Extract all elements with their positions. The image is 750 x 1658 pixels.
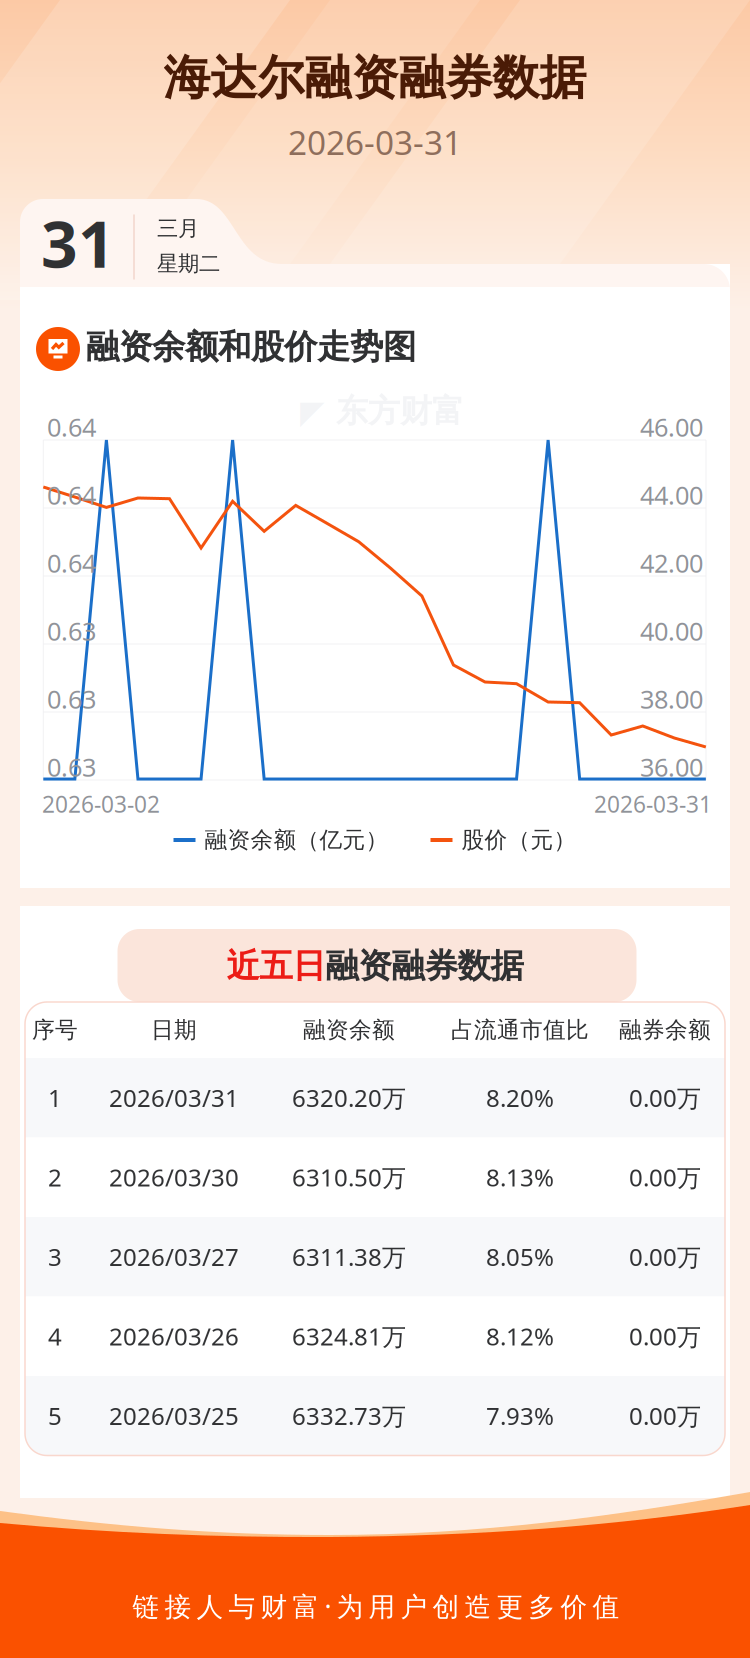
staticText: 6311.38万 [292,1241,406,1273]
staticText: 2026/03/26 [109,1320,239,1352]
staticText: 0.63 [47,682,96,716]
staticText: 40.00 [640,614,703,648]
staticText: 5 [48,1400,62,1432]
staticText: 海达尔融资融券数据 [163,49,586,107]
staticText: 4 [48,1320,62,1352]
staticText: 0.64 [47,546,96,580]
staticText: 8.05% [486,1241,554,1273]
staticText: 0.00万 [629,1082,701,1114]
staticText: 44.00 [640,478,703,512]
staticText: 0.00万 [629,1400,701,1432]
staticText: 0.64 [47,478,96,512]
staticText: 2026-03-31 [288,120,462,164]
staticText: 三月 [157,215,199,241]
staticText: 近五日 [226,945,325,986]
staticText: 融资余额 [303,1016,395,1044]
staticText: 融资融券数据 [325,945,523,986]
staticText: 6320.20万 [292,1082,406,1114]
staticText: 0.64 [47,410,96,444]
staticText: 序号 [32,1016,78,1044]
staticText: ◤ 东方财富 [300,391,464,431]
staticText: 融资余额（亿元） [204,826,388,854]
staticText: 1 [48,1082,62,1114]
staticText: 链接人与财富·为用户创造更多价值 [132,1588,619,1624]
staticText: 31 [41,200,115,285]
staticText: 2026/03/27 [109,1241,239,1273]
staticText: 0.63 [47,750,96,784]
staticText: 2026/03/31 [109,1082,239,1114]
staticText: 0.00万 [629,1320,701,1352]
staticText: 6324.81万 [292,1320,406,1352]
staticText: 2026/03/30 [109,1161,239,1193]
staticText: 0.00万 [629,1241,701,1273]
staticText: 2 [48,1161,62,1193]
staticText: 8.12% [486,1320,554,1352]
staticText: 38.00 [640,682,703,716]
staticText: 6310.50万 [292,1161,406,1193]
staticText: ◤ 东方财富 [300,1222,464,1262]
staticText: 7.93% [486,1400,554,1432]
staticText: 42.00 [640,546,703,580]
staticText: 0.63 [47,614,96,648]
staticText: 2026-03-31 [594,789,712,819]
staticText: 2026-03-02 [42,789,160,819]
staticText: 46.00 [640,410,703,444]
staticText: 股价（元） [461,826,576,854]
staticText: 占流通市值比 [451,1016,589,1044]
staticText: 2026/03/25 [109,1400,239,1432]
staticText: 融券余额 [619,1016,711,1044]
staticText: 融资余额和股价走势图 [86,326,416,367]
staticText: 8.20% [486,1082,554,1114]
staticText: 日期 [151,1016,197,1044]
staticText: 36.00 [640,750,703,784]
staticText: 6332.73万 [292,1400,406,1432]
staticText: 8.13% [486,1161,554,1193]
staticText: 0.00万 [629,1161,701,1193]
staticText: 3 [48,1241,62,1273]
staticText: 星期二 [157,250,220,277]
